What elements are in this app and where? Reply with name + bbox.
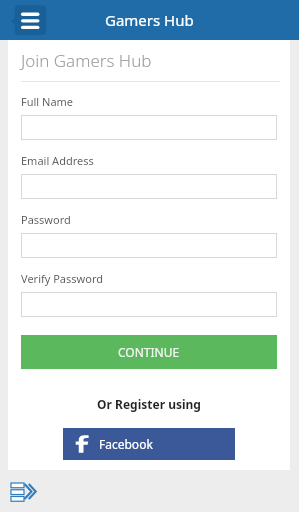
staticText: Facebook (99, 436, 153, 452)
button[interactable] (21, 233, 277, 258)
staticText: Email Address (21, 153, 94, 168)
staticText: Join Gamers Hub (21, 49, 152, 72)
button[interactable]: Open navigation menu (11, 4, 48, 37)
button[interactable] (21, 174, 277, 199)
staticText: Full Name (21, 94, 74, 109)
button[interactable]: Facebook (63, 428, 235, 460)
staticText: Password (21, 212, 71, 227)
staticText: Gamers Hub (105, 10, 194, 30)
staticText: Or Register using (8, 396, 290, 412)
button[interactable] (21, 292, 277, 317)
button[interactable]: CONTINUE (21, 335, 277, 369)
staticText: CONTINUE (118, 344, 180, 360)
button[interactable]: Playlist queue (10, 479, 35, 504)
button[interactable] (21, 115, 277, 140)
staticText: Verify Password (21, 271, 103, 286)
